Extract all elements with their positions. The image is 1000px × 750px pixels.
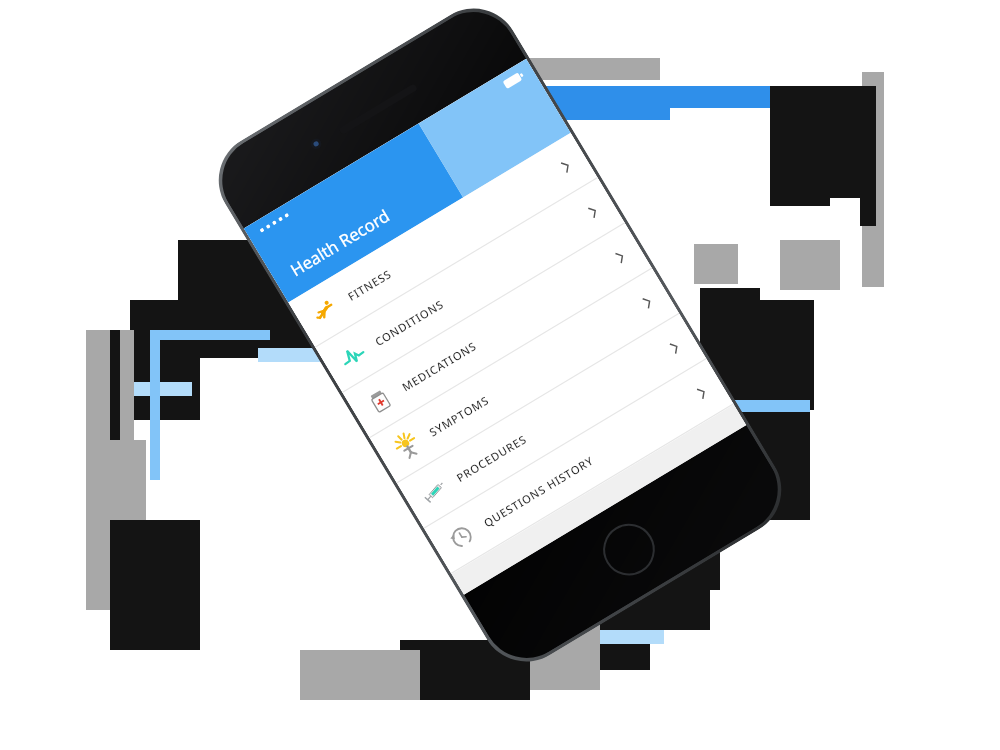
button[interactable]: QUESTIONS HISTORY xyxy=(424,359,734,574)
button[interactable]: More options xyxy=(664,421,711,455)
staticText: CONDITIONS xyxy=(372,296,447,349)
staticText: Health Record xyxy=(286,204,394,282)
staticText: PROCEDURES xyxy=(454,431,529,485)
button[interactable]: FITNESS xyxy=(288,133,598,348)
button[interactable]: MEDICATIONS xyxy=(343,223,652,438)
button[interactable]: CONDITIONS xyxy=(315,178,625,393)
staticText: MEDICATIONS xyxy=(399,338,480,395)
staticText: SYMPTOMS xyxy=(426,392,492,440)
button[interactable]: PROCEDURES xyxy=(397,314,707,529)
staticText: QUESTIONS HISTORY xyxy=(481,453,596,530)
button[interactable]: SYMPTOMS xyxy=(370,269,680,484)
staticText: FITNESS xyxy=(345,266,394,304)
